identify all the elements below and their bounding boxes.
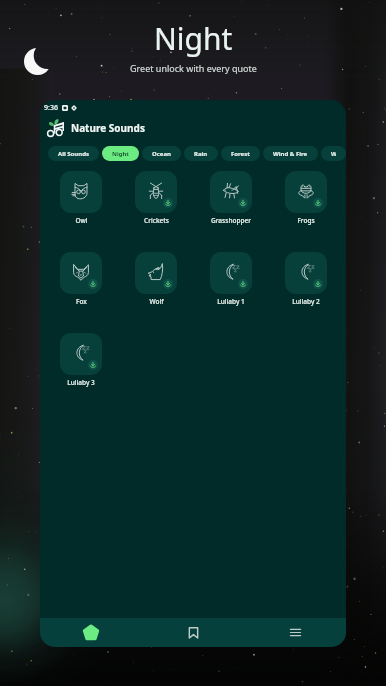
staticText: Nature Sounds [71,121,145,135]
button[interactable]: All Sounds [48,146,99,161]
staticText: 9:36 [44,103,58,113]
staticText: Grasshopper [211,216,251,225]
button[interactable]: Ocean [142,146,181,161]
button[interactable]: Bookmarks [142,618,244,647]
staticText: Night [154,18,233,59]
staticText: Forest [231,150,250,158]
button[interactable]: Night [102,146,139,161]
button[interactable]: Menu [244,618,346,647]
staticText: Lullaby 3 [67,378,95,387]
button[interactable]: Crickets [135,171,177,225]
staticText: Crickets [144,216,169,225]
button[interactable]: Wolf [135,252,177,306]
button[interactable]: Home [40,618,142,647]
button[interactable]: Wind & Fire [263,146,318,161]
staticText: Lullaby 2 [292,297,320,306]
staticText: Fox [76,297,87,306]
button[interactable]: Fox [60,252,102,306]
staticText: Ocean [152,150,171,158]
staticText: Owl [75,216,88,225]
staticText: Wolf [149,297,164,306]
button[interactable]: Waterfall [321,146,346,161]
button[interactable]: Rain [184,146,218,161]
staticText: Frogs [297,216,315,225]
staticText: Night [112,150,129,158]
staticText: All Sounds [58,150,89,158]
staticText: Wind & Fire [273,150,308,158]
button[interactable]: Forest [221,146,260,161]
staticText: Lullaby 1 [217,297,245,306]
staticText: Waterfall [331,150,336,158]
button[interactable]: Lullaby 3 [60,333,102,387]
staticText: Rain [194,150,208,158]
button[interactable]: Lullaby 2 [285,252,327,306]
staticText: Greet unlock with every quote [130,62,257,74]
button[interactable]: Owl [60,171,102,225]
button[interactable]: Lullaby 1 [210,252,252,306]
button[interactable]: Frogs [285,171,327,225]
button[interactable]: Grasshopper [210,171,252,225]
